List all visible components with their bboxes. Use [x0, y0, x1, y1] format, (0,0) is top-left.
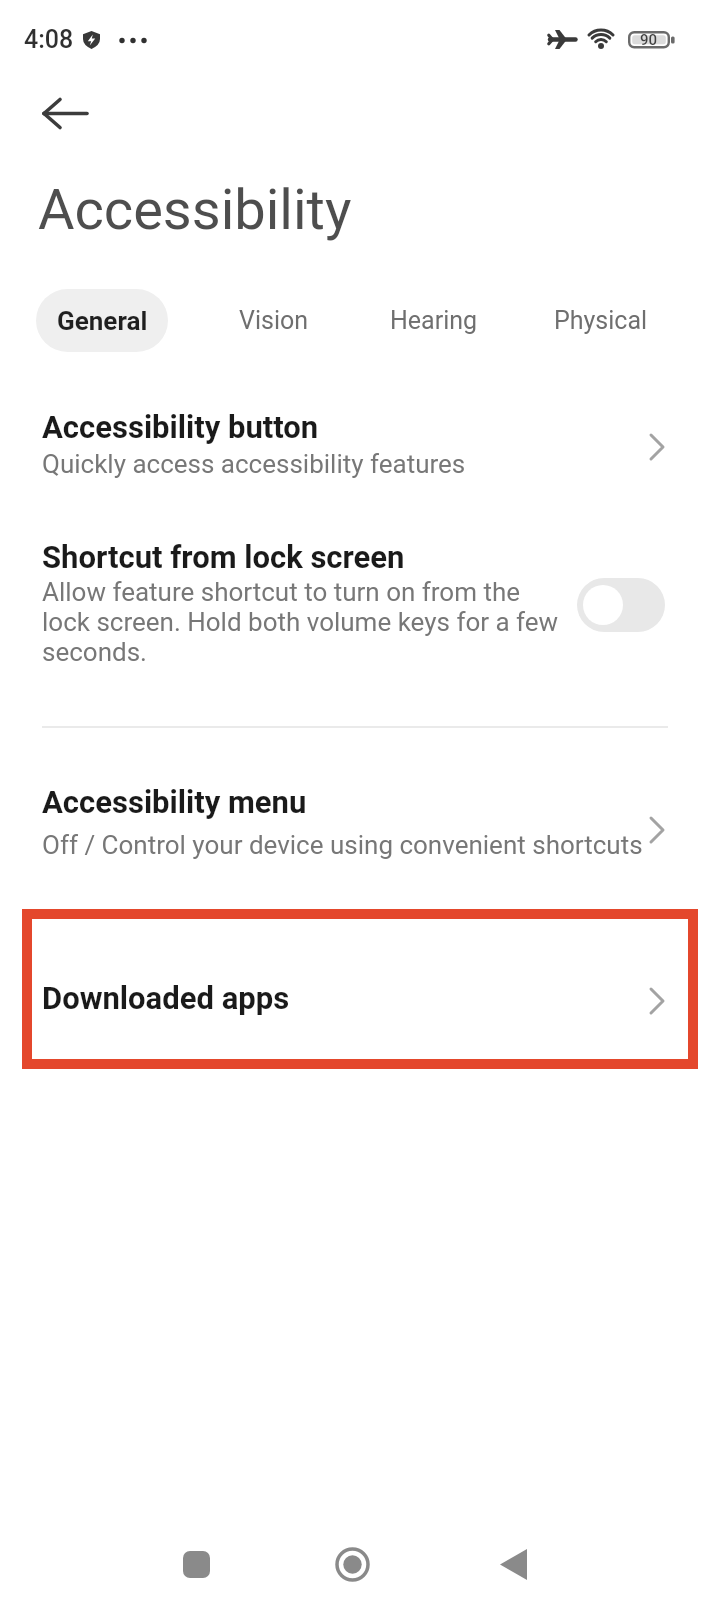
button[interactable]: General: [36, 289, 168, 352]
staticText: 4:08: [24, 25, 74, 54]
staticText: Off / Control your device using convenie…: [42, 830, 643, 860]
staticText: Downloaded apps: [42, 980, 290, 1016]
staticText: Accessibility button: [42, 409, 319, 445]
staticText: Accessibility menu: [42, 784, 307, 820]
button[interactable]: Downloaded apps: [0, 972, 712, 1032]
button[interactable]: [577, 578, 665, 632]
button[interactable]: [36, 90, 92, 137]
button[interactable]: Shortcut from lock screen: [0, 533, 712, 683]
staticText: Physical: [554, 306, 648, 335]
staticText: Accessibility: [38, 177, 352, 243]
staticText: General: [57, 306, 148, 336]
button[interactable]: Accessibility menu: [0, 776, 712, 872]
staticText: Quickly access accessibility features: [42, 449, 466, 479]
button[interactable]: Accessibility button: [0, 403, 712, 495]
button[interactable]: [486, 1537, 541, 1592]
staticText: Hearing: [390, 306, 478, 335]
button[interactable]: Physical: [542, 289, 660, 352]
button[interactable]: [169, 1537, 224, 1592]
staticText: Vision: [239, 306, 309, 335]
button[interactable]: Hearing: [375, 289, 493, 352]
button[interactable]: [325, 1537, 380, 1592]
button[interactable]: Vision: [228, 289, 320, 352]
staticText: Shortcut from lock screen: [42, 539, 405, 575]
staticText: 90: [640, 31, 658, 49]
staticText: Allow feature shortcut to turn on from t…: [42, 577, 559, 667]
